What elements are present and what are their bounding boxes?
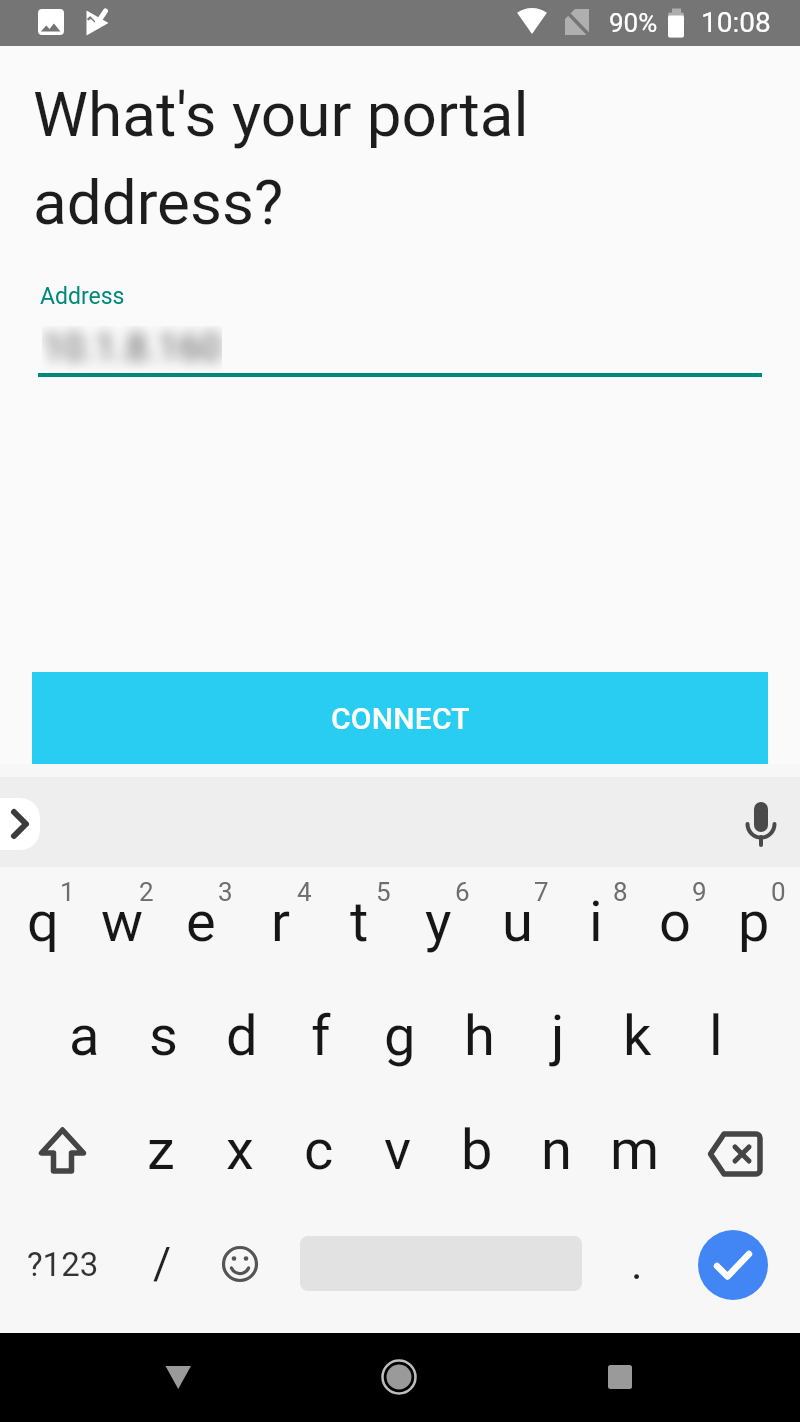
button[interactable]: i (557, 872, 635, 972)
staticText: q (27, 889, 59, 955)
button[interactable]: j (519, 986, 597, 1086)
staticText: l (709, 1003, 723, 1069)
staticText: What's your portal address? (33, 78, 529, 239)
staticText: e (186, 889, 216, 955)
button[interactable]: a (45, 986, 123, 1086)
staticText: x (226, 1117, 254, 1183)
button[interactable] (698, 1230, 768, 1300)
staticText: n (541, 1117, 572, 1183)
staticText: t (350, 889, 369, 955)
staticText: . (631, 1238, 643, 1290)
staticText: w (101, 889, 144, 955)
button[interactable]: o (636, 872, 714, 972)
button[interactable]: b (438, 1100, 516, 1200)
staticText: 10.1.8.160 (42, 326, 222, 371)
button[interactable]: n (517, 1100, 595, 1200)
button[interactable] (0, 798, 40, 850)
staticText: CONNECT (331, 701, 470, 736)
staticText: z (147, 1117, 175, 1183)
staticText: u (502, 889, 533, 955)
staticText: g (384, 1003, 416, 1069)
staticText: 7 (534, 877, 549, 907)
button[interactable] (148, 1347, 208, 1407)
button[interactable]: s (124, 986, 202, 1086)
button[interactable]: w (83, 872, 161, 972)
staticText: o (659, 889, 691, 955)
button[interactable]: z (122, 1100, 200, 1200)
button[interactable]: x (201, 1100, 279, 1200)
button[interactable]: p (715, 872, 793, 972)
button[interactable]: l (677, 986, 755, 1086)
staticText: y (425, 889, 452, 955)
staticText: r (271, 889, 290, 955)
staticText: Address (40, 283, 125, 310)
staticText: 90% (609, 8, 658, 38)
staticText: ?123 (27, 1245, 99, 1284)
button[interactable]: r (241, 872, 319, 972)
staticText: 0 (771, 877, 786, 907)
staticText: v (384, 1117, 412, 1183)
staticText: a (69, 1003, 100, 1069)
staticText: 8 (613, 877, 628, 907)
button[interactable]: CONNECT (32, 672, 768, 764)
button[interactable] (590, 1347, 650, 1407)
button[interactable]: k (598, 986, 676, 1086)
button[interactable]: t (320, 872, 398, 972)
staticText: 3 (218, 877, 233, 907)
staticText: b (461, 1117, 493, 1183)
staticText: i (589, 889, 603, 955)
staticText: 4 (297, 877, 312, 907)
button[interactable]: q (4, 872, 82, 972)
staticText: 5 (376, 877, 391, 907)
button[interactable]: h (440, 986, 518, 1086)
button[interactable]: . (607, 1234, 667, 1294)
staticText: / (153, 1238, 172, 1290)
button[interactable]: ?123 (23, 1234, 103, 1294)
staticText: p (738, 889, 770, 955)
staticText: m (610, 1117, 660, 1183)
staticText: d (226, 1003, 258, 1069)
button[interactable]: / (132, 1226, 192, 1302)
staticText: c (304, 1117, 334, 1183)
staticText: 2 (139, 877, 154, 907)
staticText: h (464, 1003, 495, 1069)
button[interactable]: f (282, 986, 360, 1086)
button[interactable]: d (203, 986, 281, 1086)
button[interactable]: u (478, 872, 556, 972)
staticText: k (623, 1003, 652, 1069)
button[interactable]: y (399, 872, 477, 972)
button[interactable] (369, 1347, 429, 1407)
staticText: 9 (692, 877, 707, 907)
button[interactable]: e (162, 872, 240, 972)
button[interactable]: g (361, 986, 439, 1086)
button[interactable]: m (596, 1100, 674, 1200)
button[interactable]: c (280, 1100, 358, 1200)
staticText: 6 (455, 877, 470, 907)
staticText: 1 (60, 877, 75, 907)
staticText: 10:08 (701, 6, 771, 39)
staticText: j (551, 1003, 565, 1069)
staticText: s (149, 1003, 178, 1069)
staticText: f (311, 1003, 331, 1069)
button[interactable]: v (359, 1100, 437, 1200)
